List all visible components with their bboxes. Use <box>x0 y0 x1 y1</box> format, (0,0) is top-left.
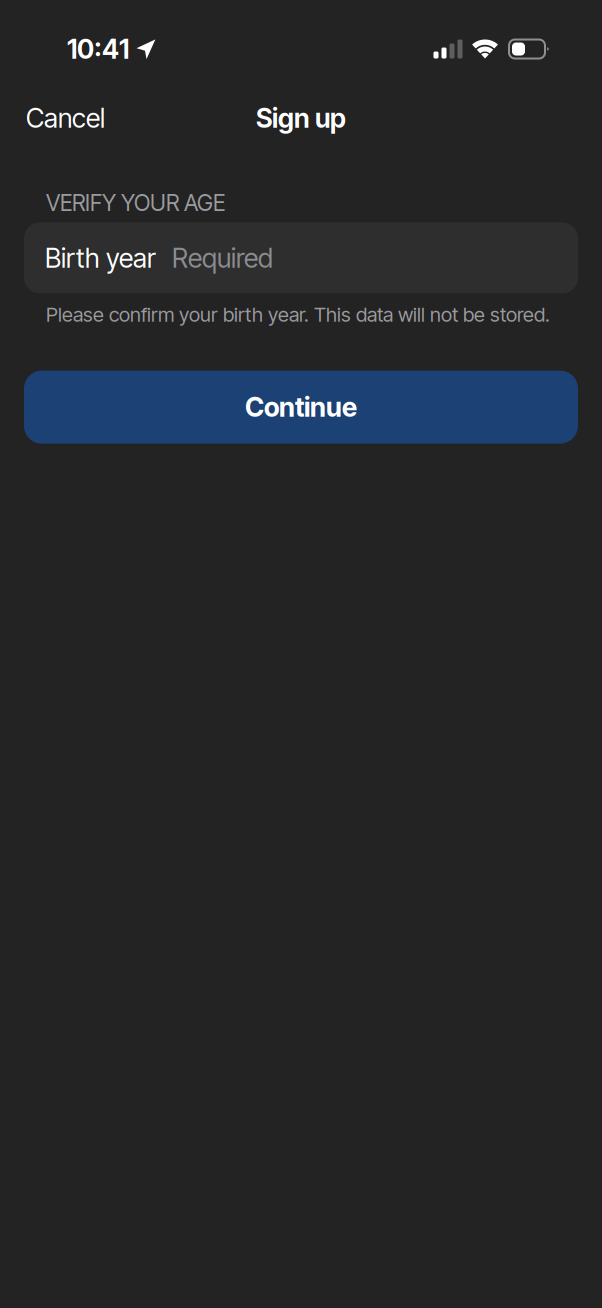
staticText: Cancel <box>26 102 105 134</box>
staticText: VERIFY YOUR AGE <box>46 189 225 216</box>
staticText: 10:41 <box>67 33 129 65</box>
button[interactable]: Birth year <box>24 222 578 293</box>
button[interactable]: Continue <box>24 371 578 444</box>
button[interactable]: Cancel <box>0 90 131 146</box>
staticText: Birth year <box>45 242 156 274</box>
staticText: Please confirm your birth year. This dat… <box>46 302 550 327</box>
staticText: Continue <box>245 391 357 423</box>
staticText: Sign up <box>256 102 346 134</box>
staticText: Required <box>172 242 273 274</box>
